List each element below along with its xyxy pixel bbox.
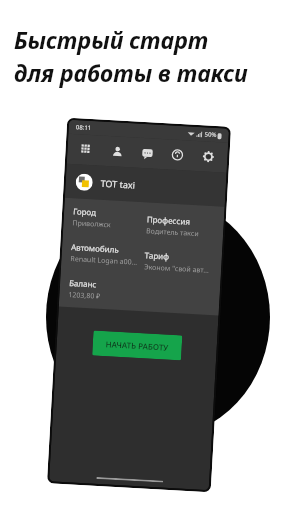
staticText: Тариф [144,249,170,262]
staticText: 1203,80 ₽ [68,290,101,302]
button[interactable]: Profile [106,140,129,163]
staticText: Баланс [69,277,97,290]
staticText: НАЧАТЬ РАБОТУ [105,338,169,353]
staticText: Водитель такси [146,226,199,239]
button[interactable]: Messages [136,142,159,165]
staticText: для работы в такси [14,57,248,88]
button[interactable]: Settings [197,145,220,168]
staticText: Renault Logan a001... [70,254,139,268]
button[interactable]: TOT taxi [65,164,226,207]
staticText: Приволжск [72,218,112,230]
button[interactable]: Help [166,143,189,166]
staticText: Автомобиль [71,241,119,255]
staticText: 50% [204,130,217,139]
button[interactable]: НАЧАТЬ РАБОТУ [92,330,182,360]
staticText: TOT taxi [100,177,136,191]
staticText: Эконом "свой авто... [144,262,212,276]
button[interactable]: Apps [75,138,98,161]
staticText: 08:11 [76,123,92,132]
staticText: Город [73,205,96,217]
staticText: Быстрый старт [14,24,209,55]
staticText: Профессия [146,213,191,227]
